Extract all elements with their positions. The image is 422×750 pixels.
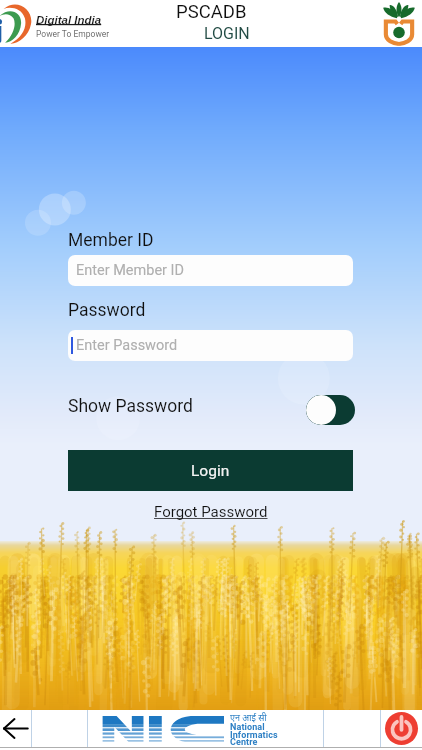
button[interactable]: Back bbox=[0, 710, 31, 747]
staticText: Login bbox=[191, 462, 230, 480]
staticText: Power To Empower bbox=[36, 29, 110, 39]
button[interactable]: Login bbox=[68, 450, 353, 491]
button[interactable]: Enter Member ID bbox=[68, 255, 353, 286]
staticText: LOGIN bbox=[204, 24, 250, 43]
staticText: Enter Member ID bbox=[76, 262, 185, 279]
staticText: Password bbox=[68, 300, 146, 321]
staticText: Member ID bbox=[68, 230, 154, 251]
staticText: Digital India bbox=[36, 14, 102, 27]
staticText: एन आई सी bbox=[230, 713, 267, 725]
button[interactable]: Show Password bbox=[306, 395, 355, 425]
staticText: Enter Password bbox=[76, 337, 178, 354]
staticText: National Informatics Centre bbox=[230, 722, 278, 747]
button[interactable]: Forgot Password bbox=[154, 503, 268, 521]
staticText: Show Password bbox=[68, 396, 193, 417]
button[interactable]: Logout bbox=[381, 710, 422, 747]
button[interactable]: Enter Password bbox=[68, 330, 353, 361]
staticText: PSCADB bbox=[176, 1, 247, 23]
